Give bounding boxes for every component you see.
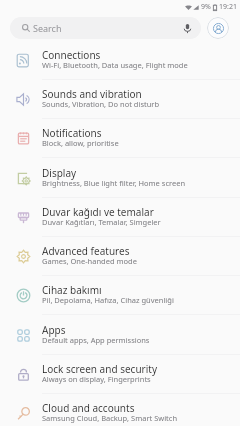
button[interactable]: Advanced features bbox=[0, 237, 240, 276]
staticText: Notifications bbox=[42, 126, 102, 140]
staticText: Always on display, Fingerprints bbox=[42, 374, 151, 384]
staticText: Display bbox=[42, 166, 77, 180]
button[interactable]: Apps bbox=[0, 316, 240, 355]
staticText: Connections bbox=[42, 48, 101, 62]
button[interactable]: Display bbox=[0, 159, 240, 198]
staticText: 9% bbox=[201, 2, 211, 12]
button[interactable]: Duvar kağıdı ve temalar bbox=[0, 198, 240, 237]
staticText: Duvar kağıdı ve temalar bbox=[42, 205, 154, 219]
staticText: Apps bbox=[42, 323, 66, 337]
button[interactable]: Account bbox=[207, 17, 229, 39]
button[interactable]: Cihaz bakımı bbox=[0, 276, 240, 315]
staticText: Cloud and accounts bbox=[42, 401, 135, 415]
staticText: Duvar Kağıtları, Temalar, Simgeler bbox=[42, 217, 161, 227]
button[interactable]: Cloud and accounts bbox=[0, 394, 240, 426]
staticText: 19:21 bbox=[219, 2, 237, 12]
button[interactable]: Sounds and vibration bbox=[0, 80, 240, 119]
staticText: Sounds, Vibration, Do not disturb bbox=[42, 99, 160, 109]
button[interactable]: Notifications bbox=[0, 119, 240, 158]
button[interactable]: Lock screen and security bbox=[0, 355, 240, 394]
button[interactable]: Voice search bbox=[177, 18, 197, 38]
staticText: Brightness, Blue light filter, Home scre… bbox=[42, 178, 186, 188]
staticText: Lock screen and security bbox=[42, 362, 157, 376]
staticText: Block, allow, prioritise bbox=[42, 138, 119, 148]
staticText: Games, One-handed mode bbox=[42, 256, 137, 266]
staticText: Advanced features bbox=[42, 244, 130, 258]
staticText: Pil, Depolama, Hafıza, Cihaz güvenliği bbox=[42, 295, 174, 305]
staticText: Default apps, App permissions bbox=[42, 335, 150, 345]
staticText: Wi-Fi, Bluetooth, Data usage, Flight mod… bbox=[42, 60, 188, 70]
staticText: Sounds and vibration bbox=[42, 87, 142, 101]
staticText: Samsung Cloud, Backup, Smart Switch bbox=[42, 413, 178, 423]
staticText: Cihaz bakımı bbox=[42, 283, 102, 297]
button[interactable]: Search bbox=[10, 17, 201, 39]
button[interactable]: Connections bbox=[0, 41, 240, 80]
staticText: Search bbox=[33, 22, 62, 34]
